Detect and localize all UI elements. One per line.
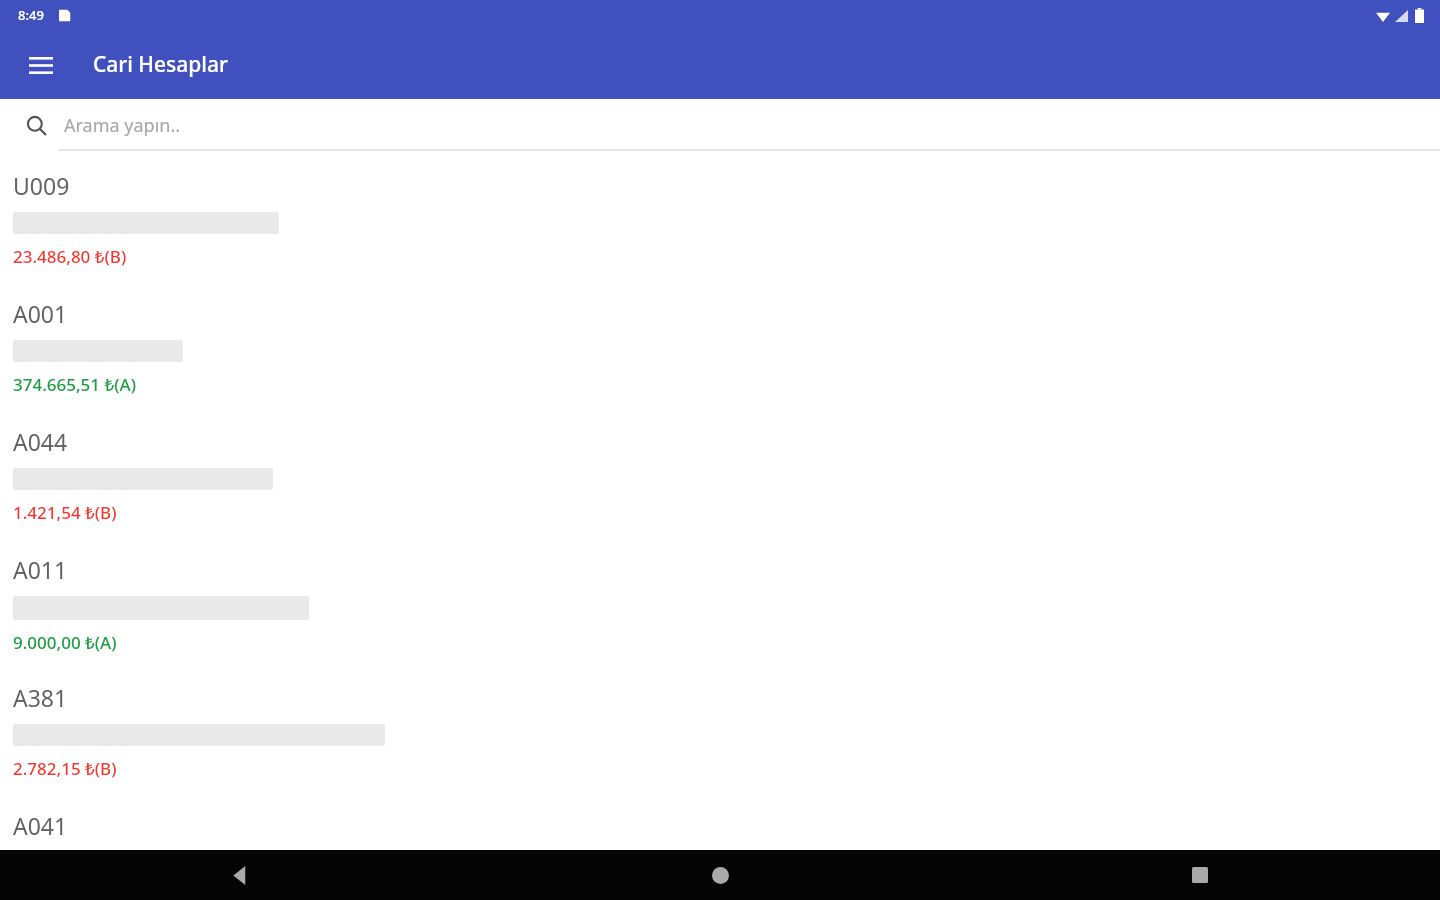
button[interactable]: A381 (0, 682, 1440, 810)
staticText: Arama yapın.. (64, 113, 181, 138)
button[interactable]: A044 (0, 426, 1440, 554)
staticText: 374.665,51 ₺(A) (13, 373, 136, 396)
button[interactable]: Recent apps (960, 850, 1440, 900)
button[interactable]: U009 (0, 170, 1440, 298)
staticText: 8:49 (18, 6, 44, 24)
button[interactable]: A041 (0, 810, 1440, 850)
button[interactable]: A011 (0, 554, 1440, 682)
staticText: A011 (13, 554, 68, 585)
staticText: A001 (13, 298, 68, 329)
button[interactable]: Home (480, 850, 960, 900)
staticText: 23.486,80 ₺(B) (13, 245, 127, 268)
staticText: 9.000,00 ₺(A) (13, 631, 117, 654)
staticText: A041 (13, 810, 68, 841)
staticText: A381 (13, 682, 68, 713)
staticText: A044 (13, 426, 68, 457)
button[interactable]: Open navigation menu (17, 41, 65, 89)
button[interactable]: Search (14, 103, 58, 147)
button[interactable]: Back (0, 850, 480, 900)
button[interactable]: A001 (0, 298, 1440, 426)
staticText: U009 (13, 170, 70, 201)
staticText: Cari Hesaplar (93, 50, 228, 79)
staticText: 2.782,15 ₺(B) (13, 757, 117, 780)
staticText: 1.421,54 ₺(B) (13, 501, 117, 524)
